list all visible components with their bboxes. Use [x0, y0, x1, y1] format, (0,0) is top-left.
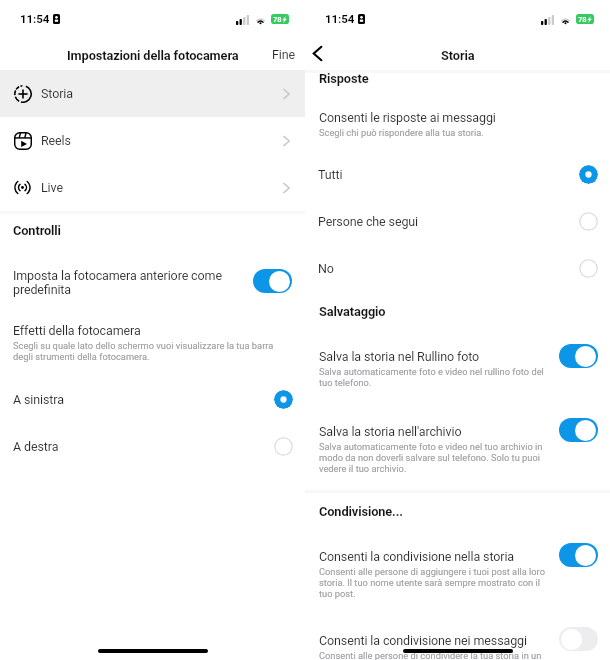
button[interactable]: Salva la storia nell'archivio — [305, 418, 610, 448]
button[interactable]: Indietro — [306, 38, 329, 69]
staticText: Consenti alle persone di aggiungere i tu… — [319, 566, 545, 599]
button[interactable]: Selezionato — [274, 390, 293, 409]
button[interactable]: Disattivato — [559, 627, 598, 651]
staticText: Storia — [41, 86, 73, 101]
staticText: Fine — [272, 47, 296, 62]
staticText: Reels — [41, 133, 71, 148]
staticText: Persone che segui — [318, 214, 419, 229]
button[interactable]: Live — [0, 164, 305, 211]
button[interactable]: Non selezionato — [579, 259, 598, 278]
staticText: Consenti la condivisione nella storia — [319, 549, 515, 564]
button[interactable]: No — [305, 250, 610, 286]
staticText: Salva automaticamente foto e video nel r… — [319, 366, 544, 388]
button[interactable]: Selezionato — [579, 165, 598, 184]
button[interactable]: Consenti la condivisione nella storia — [305, 543, 610, 573]
staticText: Imposta la fotocamera anteriore come pre… — [13, 268, 222, 297]
staticText: 11:54 — [325, 12, 355, 26]
staticText: No — [318, 261, 334, 276]
staticText: Risposte — [319, 71, 369, 86]
button[interactable]: Consenti la condivisione nei messaggi — [305, 627, 610, 657]
button[interactable]: Tutti — [305, 156, 610, 192]
button[interactable]: A destra — [0, 428, 305, 464]
staticText: A sinistra — [13, 392, 64, 407]
staticText: 11:54 — [20, 12, 50, 26]
staticText: Storia — [441, 48, 475, 63]
staticText: Consenti le risposte ai messaggi — [319, 110, 496, 125]
button[interactable]: Attivato — [559, 543, 598, 567]
staticText: A destra — [13, 439, 59, 454]
button[interactable]: A sinistra — [0, 381, 305, 417]
button[interactable]: Storia — [0, 70, 305, 117]
staticText: Salva automaticamente foto e video nel t… — [319, 441, 543, 474]
button[interactable]: Salva la storia nel Rullino foto — [305, 343, 610, 373]
staticText: Scegli su quale lato dello schermo vuoi … — [13, 340, 274, 362]
staticText: Scegli chi può rispondere alla tua stori… — [319, 127, 484, 138]
button[interactable]: Persone che segui — [305, 203, 610, 239]
staticText: Controlli — [13, 223, 61, 238]
staticText: Salva la storia nell'archivio — [319, 424, 462, 439]
button[interactable]: Non selezionato — [579, 212, 598, 231]
staticText: 78 — [273, 15, 282, 24]
staticText: Impostazioni della fotocamera — [67, 48, 239, 63]
button[interactable]: Imposta la fotocamera anteriore come pre… — [0, 262, 305, 300]
staticText: 78 — [578, 15, 587, 24]
button[interactable]: Reels — [0, 117, 305, 164]
staticText: Salva la storia nel Rullino foto — [319, 349, 480, 364]
staticText: Consenti alle persone di condividere la … — [319, 650, 542, 660]
button[interactable]: Non selezionato — [274, 437, 293, 456]
staticText: Condivisione... — [319, 504, 403, 519]
staticText: Effetti della fotocamera — [13, 323, 141, 338]
button[interactable]: Fine — [263, 38, 305, 71]
button[interactable]: Attivato — [559, 418, 598, 442]
staticText: Salvataggio — [319, 304, 386, 319]
staticText: Consenti la condivisione nei messaggi — [319, 633, 527, 648]
staticText: Tutti — [318, 167, 343, 182]
staticText: Live — [41, 180, 63, 195]
button[interactable]: Attivato — [559, 344, 598, 368]
button[interactable]: Attivato — [253, 269, 292, 293]
